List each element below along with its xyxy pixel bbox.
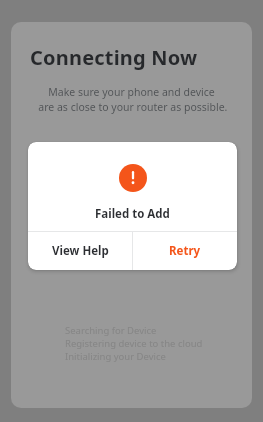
staticText: Registering device to the cloud — [65, 337, 203, 350]
staticText: Initializing your Device — [65, 350, 166, 363]
staticText: View Help — [52, 243, 109, 259]
staticText: Retry — [169, 243, 201, 259]
staticText: Failed to Add — [95, 206, 170, 222]
button[interactable]: View Help — [28, 232, 132, 270]
staticText: Make sure your phone and device are as c… — [19, 85, 244, 114]
button[interactable]: Retry — [133, 232, 237, 270]
other: Error — [119, 164, 147, 192]
staticText: Searching for Device — [65, 324, 157, 337]
staticText: Connecting Now — [30, 44, 198, 71]
